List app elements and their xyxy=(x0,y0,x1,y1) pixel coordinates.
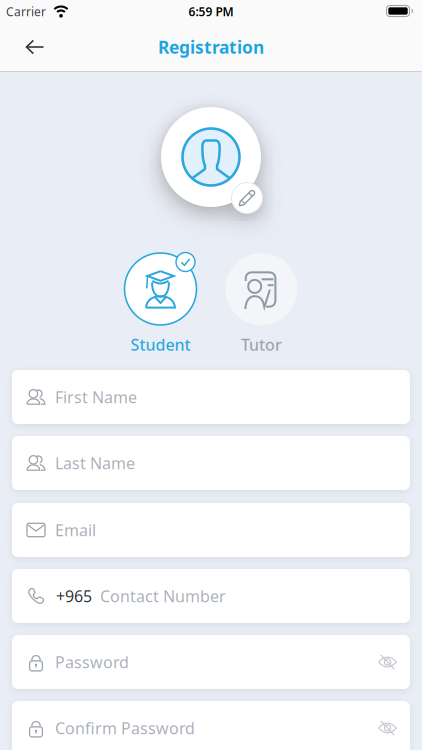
staticText: Confirm Password xyxy=(55,717,195,739)
button[interactable]: Confirm Password xyxy=(12,701,410,750)
staticText: First Name xyxy=(55,386,137,408)
staticText: 6:59 PM xyxy=(188,3,233,19)
button[interactable]: Email xyxy=(12,503,410,557)
staticText: Email xyxy=(55,519,96,541)
staticText: Carrier xyxy=(6,3,46,19)
staticText: +965 xyxy=(56,585,92,607)
button[interactable] xyxy=(223,247,299,331)
button[interactable]: Password xyxy=(12,635,410,689)
button[interactable] xyxy=(15,30,55,64)
staticText: Password xyxy=(55,651,129,673)
button[interactable]: +965 xyxy=(12,569,410,623)
staticText: Student xyxy=(130,334,190,355)
staticText: Tutor xyxy=(241,334,282,355)
staticText: Registration xyxy=(158,35,264,58)
staticText: Last Name xyxy=(55,452,135,474)
button[interactable] xyxy=(122,247,198,331)
button[interactable] xyxy=(157,103,265,211)
staticText: Contact Number xyxy=(100,585,226,607)
button[interactable]: First Name xyxy=(12,370,410,424)
button[interactable]: Last Name xyxy=(12,436,410,490)
